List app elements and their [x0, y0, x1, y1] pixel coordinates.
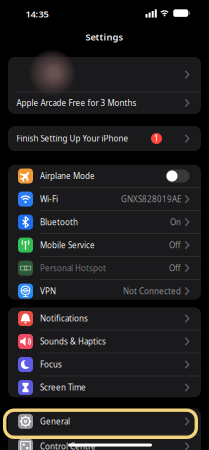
staticText: 14:35 — [25, 8, 48, 20]
staticText: Finish Setting Up Your iPhone — [16, 133, 128, 144]
staticText: Apple Arcade Free for 3 Months — [16, 98, 136, 108]
staticText: Airplane Mode — [40, 171, 95, 181]
staticText: Notifications — [40, 313, 88, 324]
button[interactable]: Mobile Service — [8, 234, 201, 256]
button[interactable]: Apple Arcade Free for 3 Months — [8, 92, 201, 114]
button[interactable]: Apple ID — [8, 57, 201, 92]
button[interactable]: Focus — [8, 353, 201, 376]
staticText: 1 — [154, 133, 159, 144]
staticText: General — [40, 416, 70, 427]
button[interactable]: Screen Time — [8, 376, 201, 399]
staticText: Bluetooth — [40, 217, 78, 227]
staticText: Mobile Service — [40, 240, 95, 250]
button[interactable]: Bluetooth — [8, 211, 201, 233]
button[interactable]: Airplane Mode — [165, 169, 189, 182]
staticText: Focus — [40, 359, 62, 370]
staticText: Off — [169, 240, 181, 250]
staticText: Personal Hotspot — [40, 263, 106, 273]
staticText: Sounds & Haptics — [40, 336, 106, 347]
button[interactable]: General — [8, 408, 201, 434]
staticText: Screen Time — [40, 382, 86, 393]
button[interactable]: Finish Setting Up Your iPhone — [8, 126, 201, 151]
staticText: Control Centre — [40, 441, 96, 450]
button[interactable]: Personal Hotspot — [8, 257, 201, 279]
staticText: Wi-Fi — [40, 194, 58, 204]
staticText: Not Connected — [123, 286, 181, 296]
staticText: GNXS828019AE — [121, 194, 181, 204]
button[interactable]: Control Centre — [8, 435, 201, 450]
button[interactable]: VPN — [8, 280, 201, 302]
staticText: Settings — [85, 31, 123, 43]
button[interactable]: Sounds & Haptics — [8, 330, 201, 353]
staticText: On — [170, 217, 181, 227]
button[interactable]: Wi-Fi — [8, 188, 201, 210]
staticText: VPN — [40, 286, 56, 296]
staticText: Off — [169, 263, 181, 273]
button[interactable]: Notifications — [8, 307, 201, 330]
